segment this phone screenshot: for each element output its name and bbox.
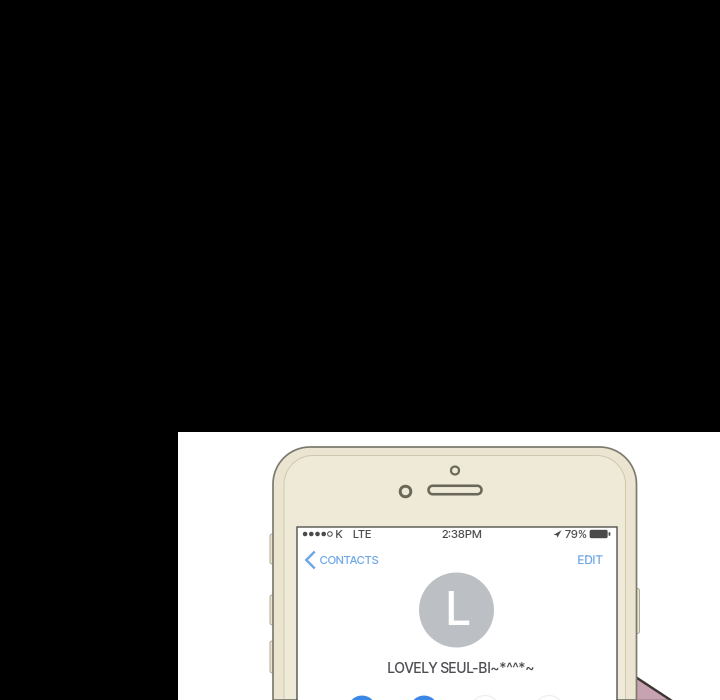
staticText: CONTACTS: [320, 553, 379, 567]
staticText: LTE: [353, 527, 371, 541]
staticText: 79%: [565, 527, 587, 541]
staticText: L: [446, 580, 470, 636]
button[interactable]: EDIT: [565, 545, 614, 575]
button[interactable]: Message: [347, 695, 376, 700]
button[interactable]: CONTACTS: [297, 543, 388, 576]
staticText: LOVELY SEUL-BI~*^^*~: [387, 659, 534, 676]
button[interactable]: Mail: [534, 695, 563, 700]
button[interactable]: Call: [409, 695, 438, 700]
staticText: EDIT: [577, 553, 602, 567]
staticText: K: [335, 527, 342, 541]
staticText: 2:38PM: [442, 527, 482, 541]
button[interactable]: Video call: [470, 695, 499, 700]
